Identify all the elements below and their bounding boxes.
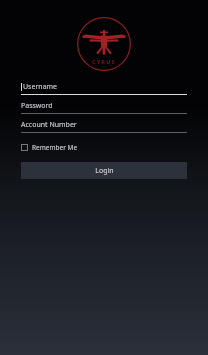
staticText: Account Number	[21, 120, 77, 129]
staticText: Password	[21, 101, 53, 110]
button[interactable]: Account Number	[21, 120, 187, 134]
button[interactable]: Username	[21, 82, 187, 96]
button[interactable]: Password	[21, 101, 187, 115]
staticText: Remember Me	[32, 143, 78, 152]
staticText: Login	[95, 166, 114, 176]
button[interactable]: Remember Me	[21, 140, 78, 154]
staticText: Username	[23, 82, 58, 91]
staticText: CYRUS	[92, 58, 116, 65]
button[interactable]: Login	[21, 162, 187, 179]
other: Cyrus logo	[76, 16, 132, 72]
